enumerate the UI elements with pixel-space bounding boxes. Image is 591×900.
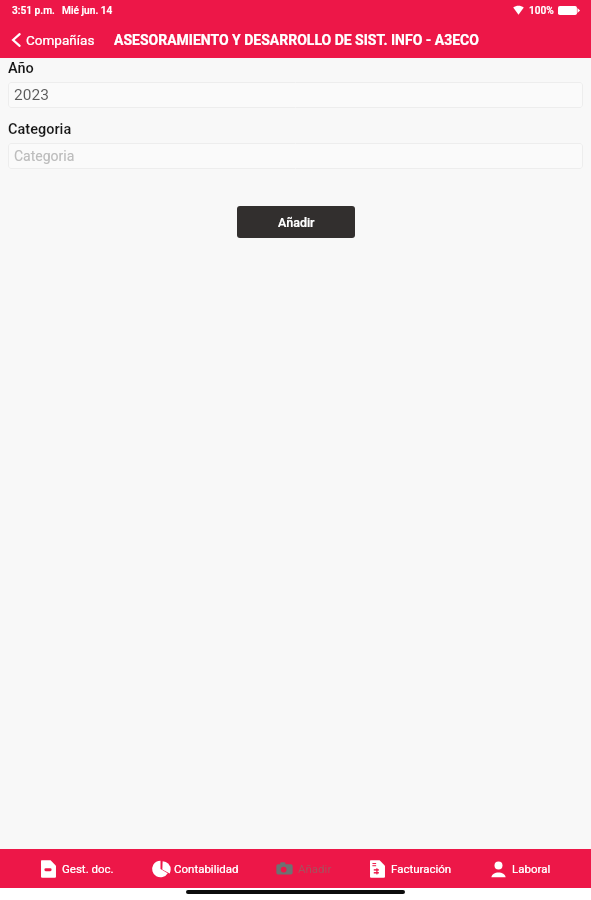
staticText: Añadir [278, 215, 315, 230]
staticText: Categoria [8, 121, 72, 138]
button[interactable]: Facturación [369, 849, 452, 888]
button[interactable]: Compañías [0, 27, 101, 53]
button[interactable]: Laboral [490, 849, 551, 888]
staticText: Facturación [391, 862, 452, 875]
staticText: 3:51 p.m. [12, 5, 55, 17]
staticText: Laboral [512, 862, 551, 875]
button[interactable]: Categoria [8, 143, 583, 169]
staticText: Mié jun. 14 [62, 5, 113, 17]
button[interactable]: Gest. doc. [40, 849, 114, 888]
staticText: Contabilidad [174, 862, 239, 875]
staticText: Año [8, 60, 34, 77]
staticText: Compañías [26, 32, 95, 48]
button[interactable]: Contabilidad [152, 849, 239, 888]
staticText: ASESORAMIENTO Y DESARROLLO DE SIST. INFO… [114, 32, 479, 48]
staticText: 100% [529, 5, 554, 17]
staticText: 2023 [14, 86, 49, 104]
staticText: Añadir [298, 862, 332, 875]
staticText: Gest. doc. [62, 862, 114, 875]
button[interactable]: 2023 [8, 82, 583, 108]
button[interactable]: Añadir [276, 849, 332, 888]
button[interactable]: Añadir [237, 206, 355, 238]
staticText: Categoria [14, 148, 75, 164]
